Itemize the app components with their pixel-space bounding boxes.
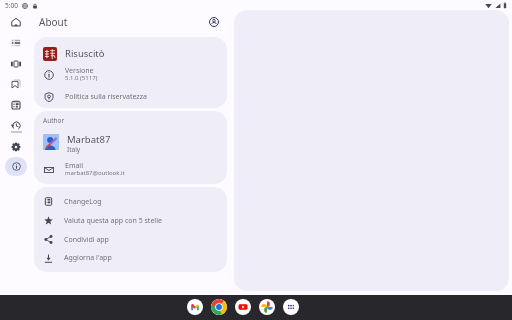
button[interactable]: Politica sulla riservatezza bbox=[34, 85, 227, 108]
button[interactable]: Presentation bbox=[5, 54, 27, 73]
button[interactable]: Account bbox=[204, 12, 224, 32]
button[interactable]: Home bbox=[5, 12, 27, 31]
button[interactable]: Bookmarks bbox=[5, 74, 27, 93]
button[interactable]: Valuta questa app con 5 stelle bbox=[34, 211, 227, 230]
staticText: Marbat87 bbox=[67, 133, 111, 146]
staticText: About bbox=[39, 15, 68, 29]
button[interactable]: Notes bbox=[5, 95, 27, 114]
staticText: Risuscitò bbox=[65, 47, 105, 60]
staticText: Aggiorna l'app bbox=[64, 253, 112, 263]
staticText: ChangeLog bbox=[64, 197, 102, 207]
button[interactable]: Marbat87 bbox=[34, 125, 227, 159]
button[interactable]: Email bbox=[34, 159, 227, 181]
button[interactable]: Condividi app bbox=[34, 230, 227, 249]
button[interactable]: YouTube bbox=[235, 299, 251, 315]
staticText: 5:00 bbox=[5, 1, 18, 10]
button[interactable]: Aggiorna l'app bbox=[34, 249, 227, 267]
button[interactable]: ChangeLog bbox=[34, 192, 227, 211]
staticText: 5.1.0 (5117) bbox=[65, 74, 98, 82]
staticText: Author bbox=[43, 116, 65, 125]
staticText: marbat87@outlook.it bbox=[65, 169, 125, 177]
staticText: Valuta questa app con 5 stelle bbox=[64, 216, 162, 226]
staticText: Politica sulla riservatezza bbox=[65, 92, 147, 102]
button[interactable]: Risuscitò bbox=[34, 42, 227, 65]
staticText: Versione bbox=[65, 66, 94, 76]
staticText: Condividi app bbox=[64, 235, 109, 245]
button[interactable]: All apps bbox=[283, 299, 299, 315]
staticText: Email bbox=[65, 161, 83, 171]
button[interactable]: Gmail bbox=[187, 299, 203, 315]
button[interactable]: Chrome bbox=[211, 299, 227, 315]
button[interactable]: Versione bbox=[34, 65, 227, 85]
button[interactable]: About bbox=[5, 157, 27, 176]
button[interactable]: Lists bbox=[5, 33, 27, 52]
button[interactable]: Settings bbox=[5, 137, 27, 156]
button[interactable]: History bbox=[5, 116, 27, 135]
staticText: Italy bbox=[67, 145, 81, 154]
button[interactable]: Google Photos bbox=[259, 299, 275, 315]
